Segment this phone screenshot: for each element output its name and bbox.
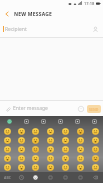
button[interactable]: Emoji 24 <box>43 154 58 163</box>
button[interactable]: Emoji 4 <box>58 126 73 136</box>
button[interactable]: Emoji 13 <box>88 136 103 145</box>
button[interactable]: Emoji 31 <box>43 163 58 172</box>
button[interactable]: Emoji 33 <box>73 163 88 172</box>
button[interactable]: Enter message <box>13 101 75 116</box>
button[interactable]: Emoji 22 <box>14 154 28 163</box>
button[interactable]: Emoji 0 <box>0 126 14 136</box>
button[interactable]: Emoji 27 <box>88 154 103 163</box>
button[interactable]: Emoji 21 <box>0 154 14 163</box>
staticText: NEW MESSAGE <box>14 11 53 18</box>
button[interactable]: Settings <box>86 116 103 126</box>
button[interactable]: Recipient <box>5 26 87 33</box>
button[interactable]: Emoji 12 <box>73 136 88 145</box>
button[interactable]: Emoji 23 <box>28 154 43 163</box>
button[interactable]: Emoji 20 <box>88 145 103 154</box>
button[interactable]: Emoji 18 <box>58 145 73 154</box>
staticText: 17:18 <box>84 1 95 6</box>
button[interactable]: Emoji 30 <box>28 163 43 172</box>
staticText: SEND <box>89 107 99 112</box>
button[interactable]: SEND <box>87 105 101 113</box>
button[interactable]: Attach <box>2 103 13 114</box>
button[interactable]: Travel <box>73 172 88 183</box>
button[interactable]: Emoji <box>0 116 18 126</box>
button[interactable]: Emoji 17 <box>43 145 58 154</box>
staticText: ABC <box>4 175 11 180</box>
button[interactable]: Other <box>69 116 86 126</box>
button[interactable]: Food <box>58 172 73 183</box>
button[interactable]: Emoji 25 <box>58 154 73 163</box>
button[interactable]: Emoji 32 <box>58 163 73 172</box>
button[interactable]: Stickers <box>18 116 35 126</box>
button[interactable]: Emoji <box>75 103 86 114</box>
button[interactable]: Emoji 26 <box>73 154 88 163</box>
button[interactable]: Emoji 10 <box>43 136 58 145</box>
button[interactable]: Emoji 29 <box>14 163 28 172</box>
button[interactable]: Emoji 9 <box>28 136 43 145</box>
staticText: Recipient <box>5 26 27 33</box>
button[interactable]: Backspace <box>88 172 103 183</box>
button[interactable]: ABC <box>0 172 14 183</box>
button[interactable]: Back <box>0 7 14 21</box>
button[interactable]: Smileys <box>28 172 43 183</box>
button[interactable]: Nature <box>43 172 58 183</box>
button[interactable]: Emoji 1 <box>14 126 28 136</box>
button[interactable]: GIF <box>35 116 52 126</box>
button[interactable]: Emoji 5 <box>73 126 88 136</box>
button[interactable]: Recent <box>52 116 69 126</box>
button[interactable]: Emoji 34 <box>88 163 103 172</box>
button[interactable]: Emoji 2 <box>28 126 43 136</box>
button[interactable]: Emoji 6 <box>88 126 103 136</box>
button[interactable]: Emoji 11 <box>58 136 73 145</box>
button[interactable]: Emoji 16 <box>28 145 43 154</box>
button[interactable]: Add contact <box>87 21 103 37</box>
button[interactable]: Emoji 28 <box>0 163 14 172</box>
button[interactable]: Emoji 19 <box>73 145 88 154</box>
button[interactable]: Emoji 7 <box>0 136 14 145</box>
button[interactable]: Emoji 3 <box>43 126 58 136</box>
button[interactable]: Emoji 14 <box>0 145 14 154</box>
button[interactable]: Emoji 15 <box>14 145 28 154</box>
staticText: Enter message <box>13 105 48 112</box>
button[interactable]: Recent <box>14 172 28 183</box>
button[interactable]: Emoji 8 <box>14 136 28 145</box>
